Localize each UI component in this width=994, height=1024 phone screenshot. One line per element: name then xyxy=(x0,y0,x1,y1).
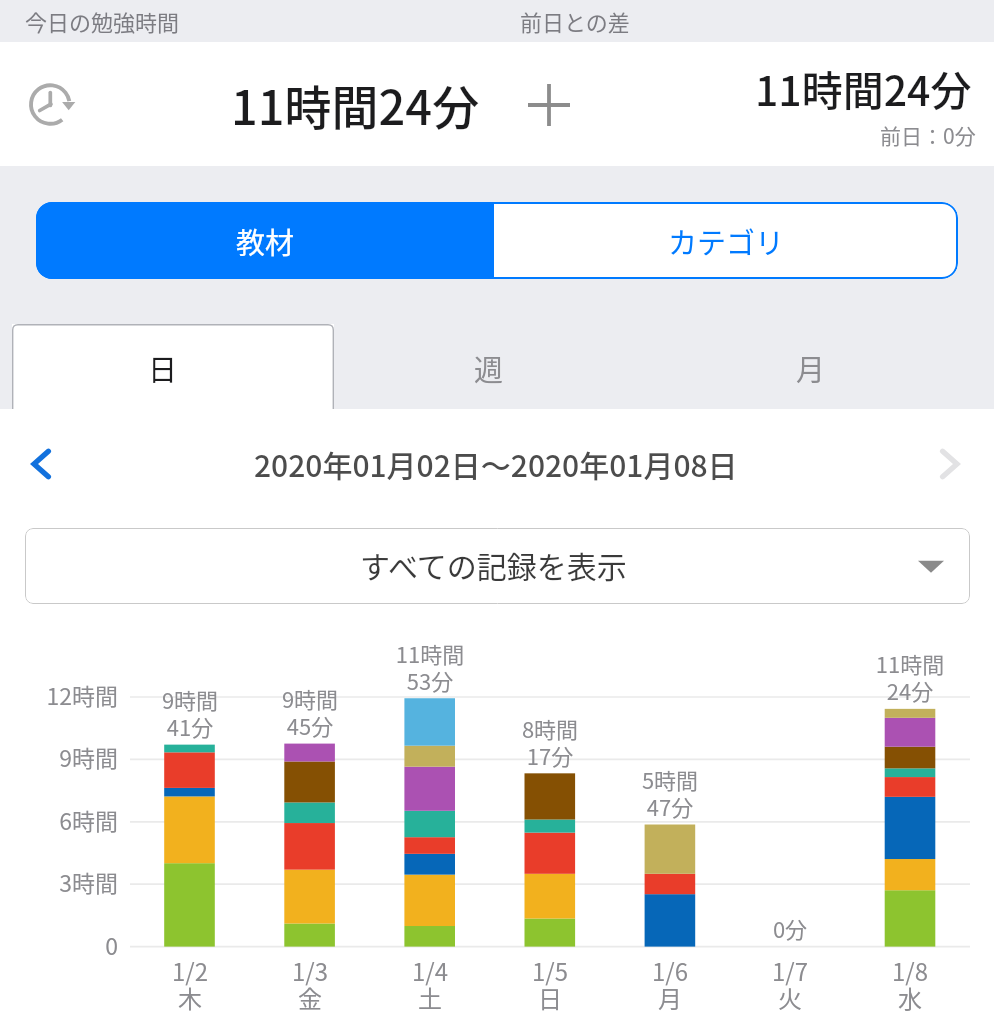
staticText: 8時間 17分 xyxy=(460,712,640,771)
staticText: 1/8 水 xyxy=(820,953,994,1015)
staticText: 1/2 木 xyxy=(100,953,280,1015)
staticText: 1/4 土 xyxy=(340,953,520,1015)
staticText: 0分 xyxy=(700,912,880,944)
staticText: 11時間 53分 xyxy=(340,637,520,696)
staticText: 今日の勉強時間 xyxy=(25,5,180,37)
button[interactable]: 月 xyxy=(658,324,994,409)
button[interactable]: 週 xyxy=(334,324,658,409)
staticText: カテゴリ xyxy=(668,220,785,262)
staticText: すべての記録を表示 xyxy=(360,543,627,586)
button[interactable]: カテゴリ xyxy=(494,202,958,279)
button[interactable]: Previous week xyxy=(14,436,70,492)
staticText: 前日との差 xyxy=(520,5,630,37)
staticText: 前日：0分 xyxy=(880,120,976,150)
staticText: 11時間24分 xyxy=(755,58,972,117)
staticText: 月 xyxy=(796,347,826,389)
button[interactable]: Next week xyxy=(921,436,977,492)
staticText: 2020年01月02日〜2020年01月08日 xyxy=(254,442,738,485)
staticText: 日 xyxy=(148,347,178,389)
staticText: 5時間 47分 xyxy=(580,763,760,822)
staticText: 1/5 日 xyxy=(460,953,640,1015)
staticText: 教材 xyxy=(236,220,295,262)
button[interactable]: すべての記録を表示 xyxy=(25,528,970,604)
staticText: 12時間 xyxy=(0,678,118,711)
button[interactable]: 日 xyxy=(12,324,334,409)
staticText: 9時間 xyxy=(0,740,118,773)
button[interactable]: 教材 xyxy=(36,202,494,279)
staticText: 週 xyxy=(474,347,504,389)
staticText: 3時間 xyxy=(0,865,118,898)
staticText: 0 xyxy=(0,928,118,961)
staticText: 6時間 xyxy=(0,803,118,836)
staticText: 1/6 月 xyxy=(580,953,760,1015)
staticText: 9時間 41分 xyxy=(100,683,280,742)
staticText: 11時間 24分 xyxy=(820,647,994,706)
staticText: 1/7 火 xyxy=(700,953,880,1015)
staticText: 9時間 45分 xyxy=(220,682,400,741)
staticText: 11時間24分 xyxy=(231,70,480,138)
staticText: 1/3 金 xyxy=(220,953,400,1015)
